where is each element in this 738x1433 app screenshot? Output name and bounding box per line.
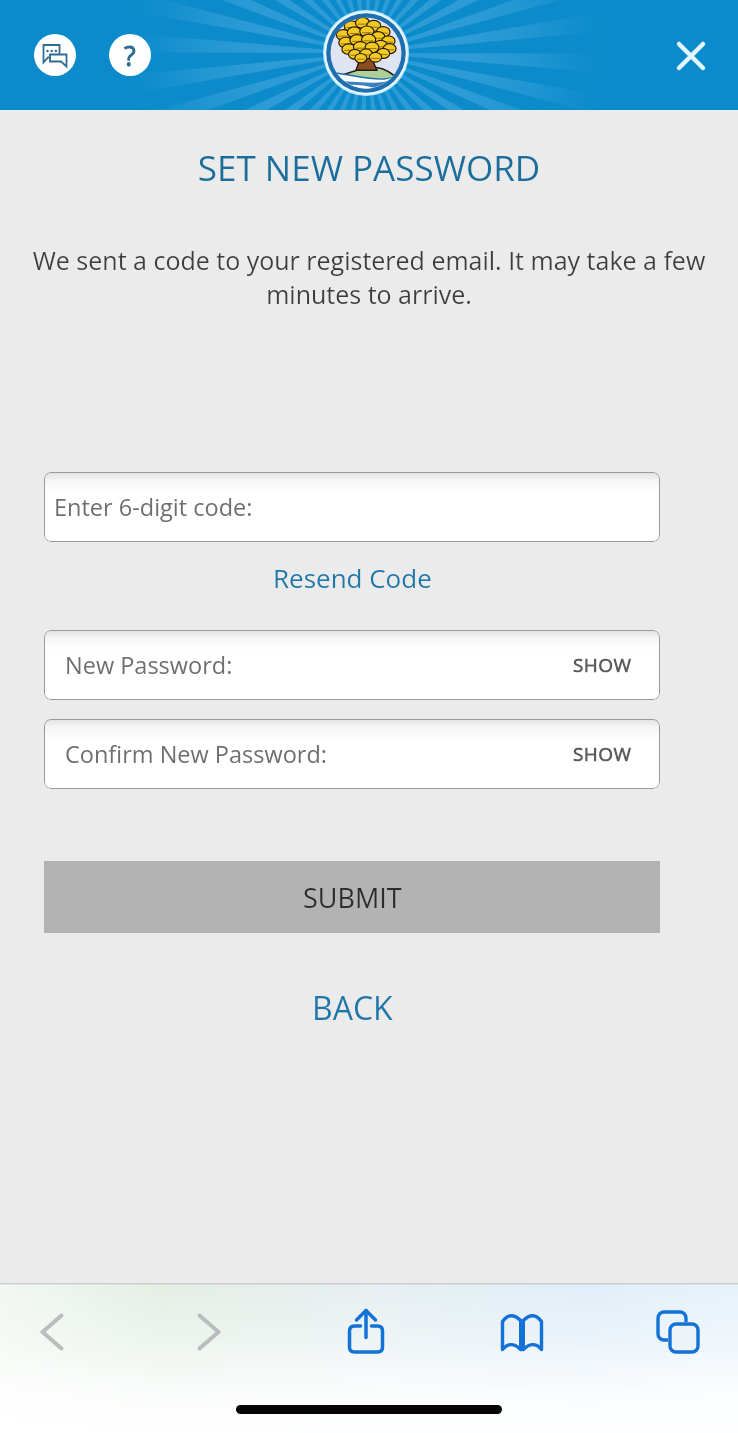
staticText: BACK <box>312 986 393 1030</box>
button[interactable]: BACK <box>298 980 407 1036</box>
button[interactable]: New Password: <box>44 630 660 700</box>
staticText: SHOW <box>573 652 632 678</box>
button[interactable]: SUBMIT <box>44 861 660 933</box>
staticText: SET NEW PASSWORD <box>0 144 738 192</box>
button[interactable]: Enter 6-digit code: <box>44 472 660 542</box>
staticText: Resend Code <box>273 560 432 595</box>
button[interactable]: Close <box>662 27 720 85</box>
button[interactable]: Bookmarks <box>488 1299 556 1367</box>
staticText: New Password: <box>65 649 233 681</box>
staticText: SUBMIT <box>303 879 402 916</box>
staticText: SHOW <box>573 741 632 767</box>
button[interactable]: Back <box>18 1298 86 1366</box>
staticText: We sent a code to your registered email.… <box>26 243 712 312</box>
staticText: Enter 6-digit code: <box>54 491 253 523</box>
staticText: Confirm New Password: <box>65 738 327 770</box>
button[interactable]: Share <box>332 1298 400 1366</box>
button[interactable]: Messages <box>34 34 76 76</box>
button[interactable]: Resend Code <box>261 554 444 601</box>
button[interactable]: Forward <box>175 1298 243 1366</box>
button[interactable]: Confirm New Password: <box>44 719 660 789</box>
button[interactable]: Tabs <box>644 1298 712 1366</box>
staticText: ? <box>124 37 136 74</box>
button[interactable]: Help <box>109 34 151 76</box>
